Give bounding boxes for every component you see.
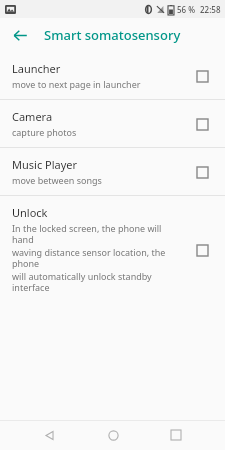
button[interactable]: Music Player toggle xyxy=(191,161,213,183)
button[interactable]: Music Player xyxy=(0,148,225,195)
button[interactable]: Unlock toggle xyxy=(191,239,213,261)
staticText: move between songs xyxy=(12,174,102,186)
staticText: Unlock xyxy=(12,205,48,220)
staticText: capture photos xyxy=(12,126,77,138)
staticText: Smart somatosensory xyxy=(44,26,181,44)
staticText: In the locked screen, the phone will han… xyxy=(12,222,183,246)
staticText: waving distance sensor location, the pho… xyxy=(12,246,183,270)
button[interactable]: Launcher toggle xyxy=(191,65,213,87)
staticText: will automatically unlock standby interf… xyxy=(12,270,183,294)
button[interactable]: Recent apps xyxy=(161,420,191,450)
staticText: Camera xyxy=(12,109,53,124)
staticText: 56 % xyxy=(177,4,196,15)
button[interactable]: Camera xyxy=(0,100,225,147)
staticText: Launcher xyxy=(12,61,61,76)
staticText: Music Player xyxy=(12,157,78,172)
button[interactable]: Back xyxy=(34,420,64,450)
button[interactable]: Camera toggle xyxy=(191,113,213,135)
button[interactable]: Home xyxy=(98,420,128,450)
button[interactable]: Unlock xyxy=(0,196,225,303)
button[interactable]: Back xyxy=(6,21,34,49)
staticText: 22:58 xyxy=(200,4,221,15)
staticText: move to next page in launcher xyxy=(12,78,141,90)
button[interactable]: Launcher xyxy=(0,52,225,99)
